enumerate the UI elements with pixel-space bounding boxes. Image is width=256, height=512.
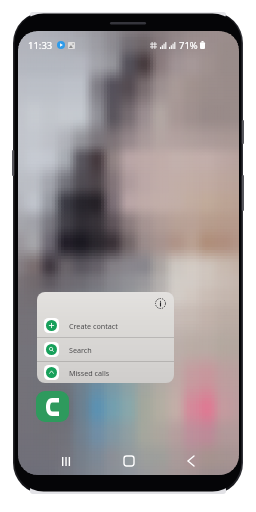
button[interactable]: Contacts [36, 391, 69, 422]
staticText: Search [69, 345, 92, 355]
button[interactable]: Search [37, 338, 174, 361]
staticText: Create contact [69, 321, 118, 331]
button[interactable]: Missed calls [37, 362, 174, 383]
button[interactable]: Create contact [37, 314, 174, 337]
button[interactable]: App info [153, 296, 168, 311]
button[interactable]: Home [115, 447, 143, 475]
staticText: Missed calls [69, 368, 110, 378]
staticText: 71% [179, 39, 198, 52]
staticText: 11:33 [28, 39, 53, 52]
button[interactable]: Back [177, 447, 205, 475]
button[interactable]: Recents [52, 447, 80, 475]
